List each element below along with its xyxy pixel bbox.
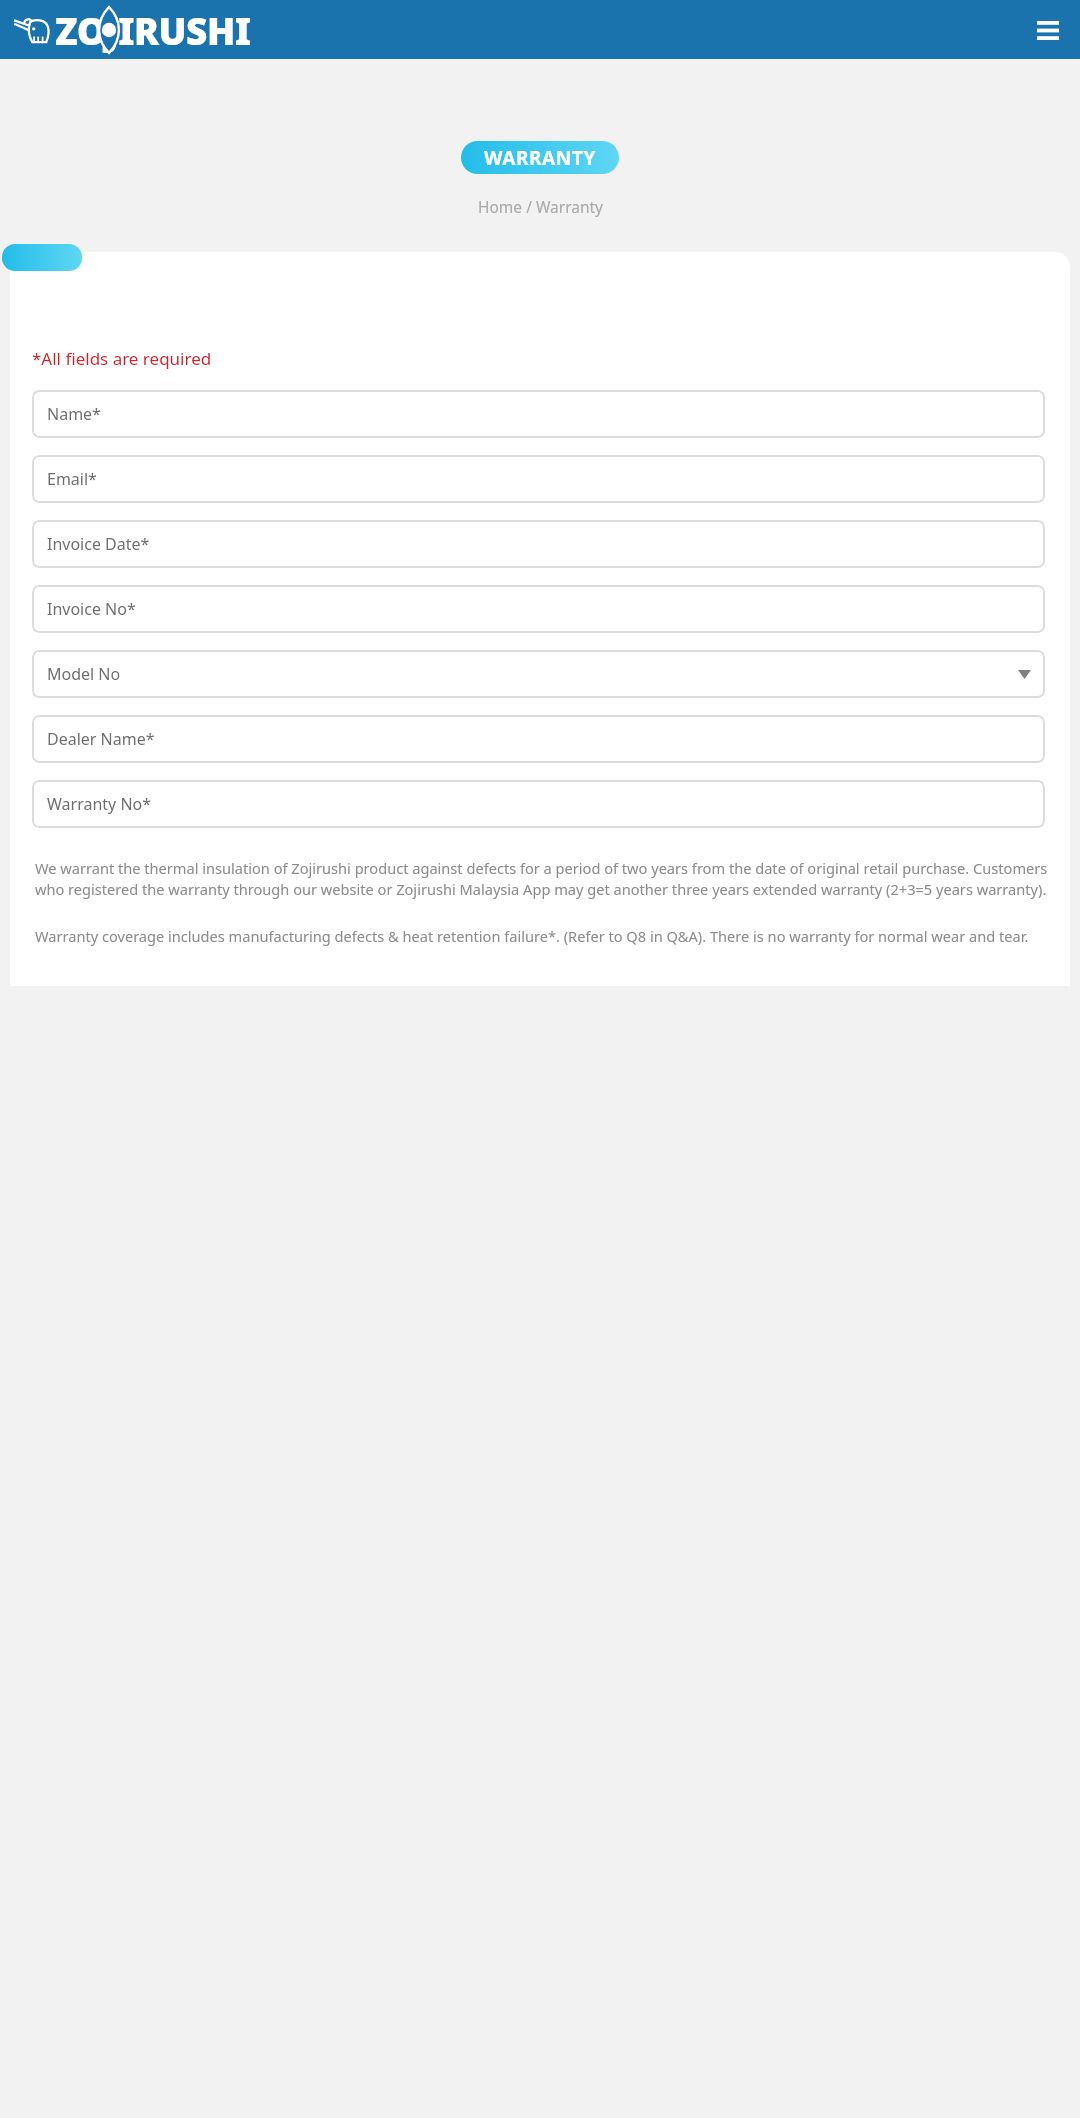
- staticText: Dealer Name*: [47, 728, 155, 750]
- staticText: Email*: [47, 468, 97, 490]
- staticText: Home / Warranty: [478, 196, 603, 217]
- staticText: Invoice Date*: [47, 533, 150, 555]
- staticText: Warranty No*: [47, 793, 152, 815]
- button[interactable]: Open menu: [1026, 8, 1070, 52]
- button[interactable]: Dealer Name*: [32, 715, 1045, 763]
- staticText: Warranty coverage includes manufacturing…: [35, 926, 1029, 946]
- button[interactable]: Section tab: [2, 244, 82, 271]
- staticText: ZOJIRUSHI: [55, 5, 251, 55]
- button[interactable]: Model No: [32, 650, 1045, 698]
- button[interactable]: Invoice No*: [32, 585, 1045, 633]
- staticText: Name*: [47, 403, 101, 425]
- button[interactable]: Zojirushi home: [13, 5, 251, 55]
- staticText: *All fields are required: [32, 347, 212, 370]
- button[interactable]: Warranty No*: [32, 780, 1045, 828]
- button[interactable]: Invoice Date*: [32, 520, 1045, 568]
- staticText: Invoice No*: [47, 598, 136, 620]
- button[interactable]: Email*: [32, 455, 1045, 503]
- staticText: Model No: [47, 663, 121, 685]
- button[interactable]: Name*: [32, 390, 1045, 438]
- button[interactable]: WARRANTY: [461, 141, 619, 174]
- staticText: WARRANTY: [484, 145, 596, 171]
- staticText: We warrant the thermal insulation of Zoj…: [35, 858, 1048, 900]
